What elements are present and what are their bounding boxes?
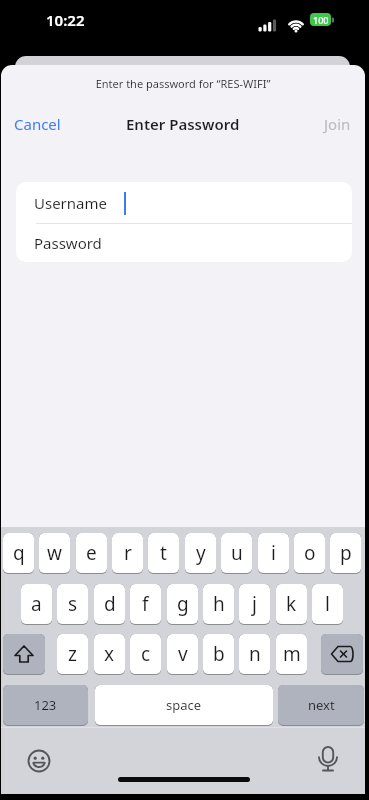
button[interactable]: next	[278, 685, 364, 726]
staticText: y	[196, 540, 206, 566]
staticText: d	[104, 591, 116, 617]
staticText: Password	[34, 233, 102, 253]
staticText: space	[166, 696, 202, 714]
staticText: g	[177, 591, 189, 617]
staticText: Enter the password for “RES-WIFI”	[1, 76, 365, 91]
button[interactable]: l	[312, 584, 343, 625]
button[interactable]: x	[94, 634, 125, 675]
staticText: Cancel	[14, 114, 61, 134]
staticText: x	[104, 641, 115, 667]
button[interactable]	[321, 634, 363, 675]
staticText: s	[68, 591, 78, 617]
button[interactable]: Username	[16, 182, 352, 223]
staticText: j	[252, 591, 257, 617]
button[interactable]: s	[57, 584, 88, 625]
button[interactable]: f	[130, 584, 161, 625]
button[interactable]: b	[203, 634, 234, 675]
button[interactable]: h	[203, 584, 234, 625]
staticText: e	[86, 540, 97, 566]
staticText: Join	[324, 114, 351, 134]
staticText: p	[340, 540, 352, 566]
button[interactable]: d	[94, 584, 125, 625]
button[interactable]: m	[276, 634, 307, 675]
staticText: r	[124, 540, 132, 566]
staticText: i	[271, 540, 276, 566]
staticText: f	[142, 591, 149, 617]
staticText: w	[47, 540, 62, 566]
button[interactable]: o	[294, 533, 325, 574]
button[interactable]: t	[148, 533, 179, 574]
staticText: b	[213, 641, 225, 667]
staticText: n	[249, 641, 261, 667]
button[interactable]: p	[330, 533, 361, 574]
button[interactable]: u	[221, 533, 252, 574]
button[interactable]: w	[39, 533, 70, 574]
button[interactable]: q	[3, 533, 34, 574]
button[interactable]: e	[76, 533, 107, 574]
button[interactable]	[25, 747, 53, 775]
staticText: l	[325, 591, 330, 617]
staticText: c	[141, 641, 151, 667]
button[interactable]: n	[239, 634, 270, 675]
button[interactable]: z	[57, 634, 88, 675]
staticText: o	[304, 540, 316, 566]
button[interactable]: space	[95, 685, 273, 726]
staticText: v	[178, 641, 188, 667]
staticText: z	[68, 641, 77, 667]
staticText: t	[160, 540, 167, 566]
button[interactable]: r	[112, 533, 143, 574]
staticText: next	[308, 696, 335, 714]
staticText: 123	[34, 696, 57, 714]
button[interactable]: Cancel	[14, 114, 61, 134]
staticText: a	[31, 591, 42, 617]
button[interactable]: i	[258, 533, 289, 574]
staticText: k	[286, 591, 297, 617]
button[interactable]: Password	[16, 223, 352, 262]
button[interactable]: g	[167, 584, 198, 625]
staticText: 100	[313, 14, 329, 26]
button[interactable]: y	[185, 533, 216, 574]
staticText: q	[13, 540, 25, 566]
staticText: Username	[34, 193, 107, 213]
staticText: Enter Password	[126, 114, 240, 134]
staticText: h	[213, 591, 225, 617]
button[interactable]: 123	[3, 685, 88, 726]
staticText: u	[231, 540, 243, 566]
button[interactable]: Join	[324, 114, 351, 134]
staticText: m	[283, 641, 301, 667]
staticText: 10:22	[46, 10, 85, 30]
button[interactable]	[3, 634, 45, 675]
button[interactable]: a	[21, 584, 52, 625]
button[interactable]	[314, 745, 342, 773]
button[interactable]: c	[130, 634, 161, 675]
button[interactable]: k	[276, 584, 307, 625]
button[interactable]: j	[239, 584, 270, 625]
button[interactable]: v	[167, 634, 198, 675]
